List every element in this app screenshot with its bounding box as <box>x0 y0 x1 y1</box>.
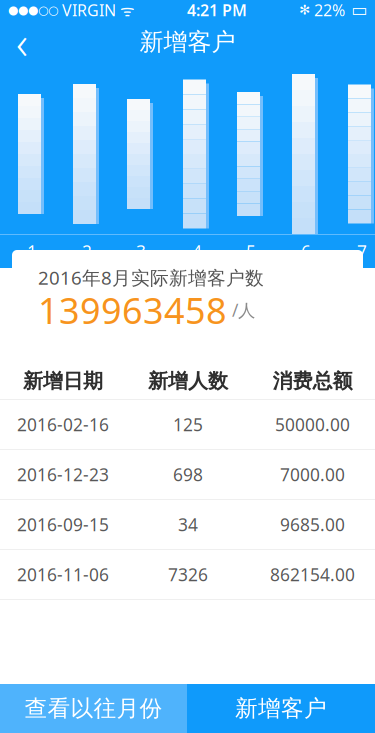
staticText: 139963458 <box>38 286 227 334</box>
staticText: 2016-02-16 <box>17 413 109 436</box>
staticText: 7326 <box>168 563 208 586</box>
staticText: VIRGIN <box>58 0 116 21</box>
staticText: 新增日期 <box>23 369 103 393</box>
staticText: 查看以往月份 <box>24 695 162 722</box>
staticText: 新增人数 <box>148 369 228 393</box>
staticText: 7000.00 <box>280 463 345 486</box>
staticText: 2 <box>82 240 92 263</box>
button[interactable]: 查看以往月份 <box>0 684 187 733</box>
staticText: 1 <box>27 240 37 263</box>
staticText: 22% <box>310 0 345 21</box>
staticText: ✻ <box>299 2 310 17</box>
staticText: ‹ <box>16 12 28 72</box>
staticText: /人 <box>227 298 255 321</box>
staticText: 50000.00 <box>275 413 350 436</box>
staticText: 消费总额 <box>272 369 352 393</box>
staticText: ᯤ <box>116 0 135 21</box>
staticText: 2016年8月实际新增客户数 <box>38 265 264 290</box>
staticText: 3 <box>136 240 146 263</box>
staticText: 5 <box>246 240 256 263</box>
staticText: 新增客户 <box>235 695 327 722</box>
staticText: 9685.00 <box>280 513 345 536</box>
staticText: 34 <box>178 513 198 536</box>
staticText: 125 <box>173 413 203 436</box>
button[interactable]: Back <box>0 20 44 64</box>
button[interactable]: 新增客户 <box>187 684 375 733</box>
staticText: 6 <box>301 240 311 263</box>
staticText: 4 <box>192 240 202 263</box>
staticText: 2016-09-15 <box>17 513 109 536</box>
staticText: ●●●○○ <box>8 3 58 17</box>
staticText: 2016-11-06 <box>17 563 109 586</box>
staticText: 7 <box>357 240 367 263</box>
staticText: 4:21 PM <box>187 0 247 21</box>
staticText: 698 <box>173 463 203 486</box>
staticText: ▭ <box>345 0 367 20</box>
staticText: 862154.00 <box>270 563 355 586</box>
staticText: 2016-12-23 <box>17 463 109 486</box>
staticText: 新增客户 <box>139 27 235 57</box>
